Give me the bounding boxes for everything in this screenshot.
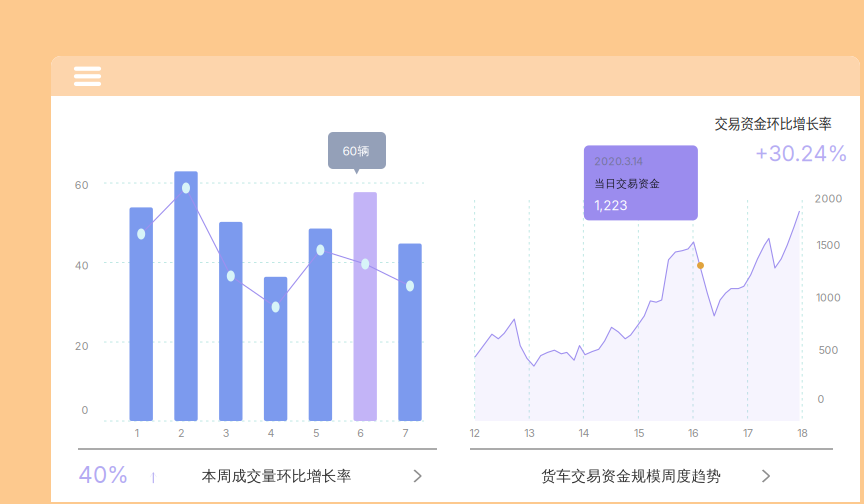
staticText: 20 (75, 339, 89, 352)
staticText: 13 (524, 426, 535, 439)
staticText: 2 (178, 426, 185, 439)
staticText: 1 (135, 426, 139, 439)
staticText: 1000 (816, 291, 841, 304)
staticText: 交易资金环比增长率 (714, 113, 831, 133)
button[interactable]: Menu (66, 59, 109, 94)
staticText: 3 (223, 426, 230, 439)
staticText: 16 (688, 426, 699, 439)
staticText: 14 (578, 426, 589, 439)
staticText: 60辆 (342, 143, 369, 158)
staticText: 货车交易资金规模周度趋势 (541, 467, 721, 485)
staticText: 当日交易资金 (594, 177, 660, 190)
staticText: 7 (402, 426, 408, 439)
staticText: 2000 (814, 192, 842, 205)
staticText: 500 (818, 343, 838, 356)
staticText: 18 (797, 426, 808, 439)
staticText: 6 (357, 426, 364, 439)
staticText: 本周成交量环比增长率 (202, 467, 352, 485)
staticText: 2020.3.14 (594, 155, 643, 168)
button[interactable]: 货车交易资金规模周度趋势 (470, 453, 833, 501)
staticText: 1500 (816, 238, 840, 251)
staticText: 15 (634, 426, 644, 439)
staticText: 4 (268, 426, 275, 439)
staticText: 60 (75, 178, 89, 191)
staticText: 40% (78, 461, 129, 488)
staticText: 0 (817, 392, 824, 405)
staticText: 17 (743, 426, 753, 439)
staticText: 12 (470, 426, 481, 439)
staticText: 1,223 (594, 197, 627, 213)
staticText: 40 (75, 259, 89, 272)
button[interactable]: 40% (78, 453, 437, 501)
staticText: 5 (313, 426, 319, 439)
staticText: 0 (81, 403, 88, 416)
staticText: +30.24% (754, 141, 848, 166)
